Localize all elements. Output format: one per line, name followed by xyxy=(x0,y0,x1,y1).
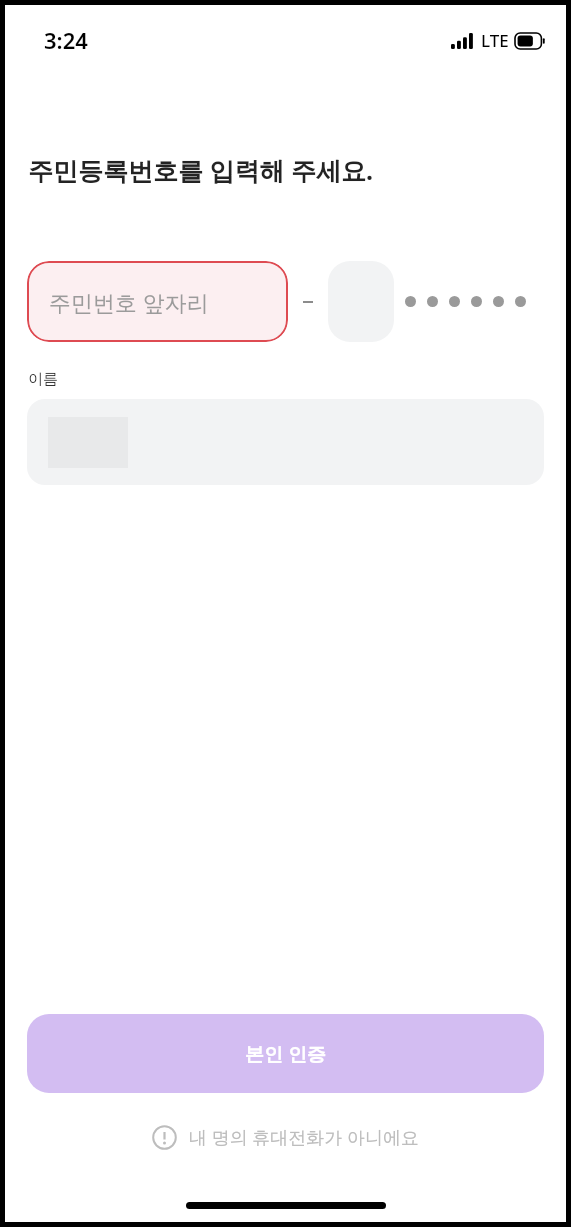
staticText: 이름 xyxy=(28,370,58,389)
button[interactable]: 내 명의 휴대전화가 아니에요 xyxy=(140,1117,432,1158)
staticText: 본인 인증 xyxy=(245,1041,326,1067)
staticText: 내 명의 휴대전화가 아니에요 xyxy=(189,1125,420,1150)
button[interactable]: 주민번호 뒷자리 첫 자리 xyxy=(328,261,394,342)
button[interactable]: 이름 입력 xyxy=(27,399,544,485)
staticText: LTE xyxy=(481,29,509,52)
staticText: 3:24 xyxy=(44,25,88,55)
staticText: 주민번호 앞자리 xyxy=(49,287,209,317)
staticText: 주민등록번호를 입력해 주세요. xyxy=(28,153,374,187)
button[interactable]: 주민번호 앞자리 xyxy=(27,261,288,342)
button[interactable]: 본인 인증 xyxy=(27,1014,544,1093)
